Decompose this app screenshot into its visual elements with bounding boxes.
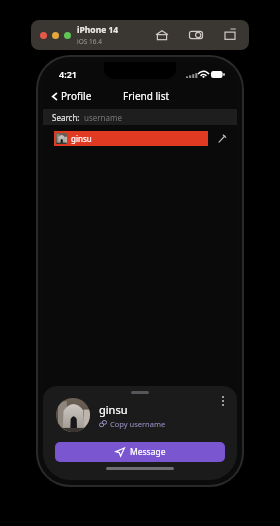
button[interactable]: Minimize [52,32,59,39]
staticText: Copy username [110,419,166,429]
button[interactable]: Zoom [64,32,71,39]
button[interactable]: Profile [48,87,94,105]
staticText: Search: [52,112,80,123]
button[interactable]: Home [153,26,171,44]
staticText: iOS 16.4 [77,37,102,46]
staticText: username [84,112,123,123]
staticText: Profile [61,89,92,103]
button[interactable]: Avatar [56,398,90,432]
button[interactable]: Screenshot [187,26,205,44]
staticText: iPhone 14 [77,24,119,36]
button[interactable]: Search: [43,109,237,125]
button[interactable]: ginsu [54,131,208,146]
button[interactable]: Close [40,32,47,39]
button[interactable]: Edit [215,132,229,146]
button[interactable]: Record [221,26,239,44]
button[interactable]: Message [55,442,225,462]
staticText: Friend list [123,89,170,103]
staticText: ginsu [99,402,128,417]
button[interactable]: More options [217,392,229,410]
button[interactable]: Copy username [99,419,166,429]
staticText: ginsu [71,133,92,144]
staticText: Message [130,446,166,458]
staticText: 4:21 [59,68,77,80]
